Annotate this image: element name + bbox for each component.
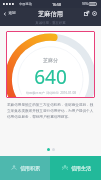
staticText: 640	[34, 64, 67, 90]
staticText: 芝麻分	[43, 57, 58, 63]
button[interactable]: 芝麻分	[6, 31, 95, 98]
button[interactable]: Share	[83, 10, 90, 17]
staticText: 真诚信用，重在积累	[35, 21, 66, 25]
staticText: 93%	[82, 2, 88, 6]
staticText: 信用积累	[20, 165, 40, 171]
staticText: 信用极好用户 评估时间 2016.01.08	[26, 91, 76, 95]
staticText: 返回	[8, 11, 16, 16]
staticText: 芝麻信用是独立的第三方征信机构，依据商业原则，独立采集各类数据并独立进行信用评估…	[7, 103, 94, 119]
button[interactable]: 信用生活	[50, 156, 101, 180]
button[interactable]: Back	[0, 11, 19, 16]
staticText: 16:58	[52, 2, 61, 7]
staticText: 芝麻信用	[38, 10, 63, 18]
staticText: 信用生活	[71, 165, 91, 171]
button[interactable]: Settings	[91, 10, 98, 17]
staticText: 中国移动	[19, 2, 32, 6]
button[interactable]: 信用积累	[0, 156, 50, 180]
